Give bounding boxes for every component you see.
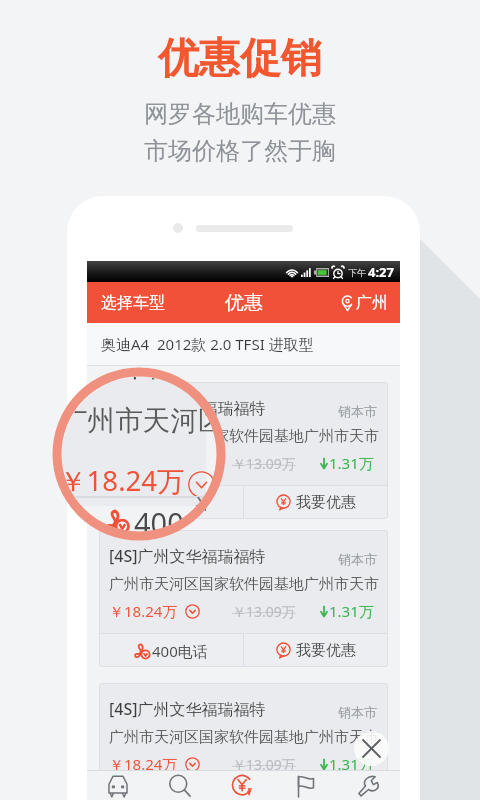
staticText: 广州市天河区国家软件园基地广州市天市 xyxy=(109,427,379,446)
staticText: ￥13.09万 xyxy=(232,454,296,473)
staticText: 下午 xyxy=(348,267,366,278)
staticText: [4S]广州文华福瑞福特 xyxy=(109,545,266,567)
staticText: 广州市天河区国家软件园基地广州市天市 xyxy=(109,575,379,594)
button[interactable]: 广州 xyxy=(334,285,400,321)
staticText: 话 xyxy=(196,493,217,523)
staticText: 优惠促销 xyxy=(158,33,322,85)
button[interactable]: 选择车型 xyxy=(87,285,173,321)
staticText: 市场价格了然于胸 xyxy=(144,136,336,166)
button[interactable]: 400电话 xyxy=(99,486,243,519)
staticText: 销本市 xyxy=(338,704,377,720)
button[interactable]: Flag xyxy=(274,771,337,800)
staticText: [4S]广州文华福瑞福特 xyxy=(109,698,266,720)
staticText: 1.31万 xyxy=(329,754,374,774)
button[interactable]: Close xyxy=(354,731,389,766)
button[interactable]: 400电话 xyxy=(99,787,243,800)
button[interactable]: [4S]广州文华福瑞福特 xyxy=(99,382,388,519)
staticText: ￥18.24万 xyxy=(109,601,178,621)
staticText: [4S]广州文华福瑞福特 xyxy=(109,397,266,419)
button[interactable]: [4S]广州文华福瑞福特 xyxy=(99,530,388,667)
staticText: 选择车型 xyxy=(101,293,165,313)
staticText: 销本市 xyxy=(338,403,377,419)
staticText: ￥13.09万 xyxy=(232,755,296,774)
button[interactable]: 400电话 xyxy=(99,634,243,667)
button[interactable]: Deals xyxy=(211,771,274,800)
button[interactable]: [4S]广州文华福瑞福特 xyxy=(99,683,388,800)
staticText: ￥13.09万 xyxy=(232,602,296,621)
staticText: 我要优惠 xyxy=(296,787,356,800)
staticText: 1.31万 xyxy=(329,453,374,473)
staticText: ￥18.24万 xyxy=(62,462,185,500)
staticText: 广州 xyxy=(356,293,388,313)
staticText: 我要优惠 xyxy=(296,493,356,512)
button[interactable]: Tools xyxy=(337,771,400,800)
button[interactable]: Cars xyxy=(87,771,149,800)
staticText: 网罗各地购车优惠 xyxy=(144,99,336,129)
button[interactable]: 我要优惠 xyxy=(244,787,388,800)
staticText: 4:27 xyxy=(368,263,394,281)
staticText: 广州市天河区国家软件园基地广州市天市 xyxy=(109,728,379,747)
staticText: 销本市 xyxy=(338,551,377,567)
staticText: 400 xyxy=(134,503,184,532)
button[interactable]: Search xyxy=(149,771,211,800)
staticText: 400电话 xyxy=(152,493,208,513)
staticText: 我要优惠 xyxy=(296,641,356,660)
staticText: 400电话 xyxy=(152,787,208,800)
staticText: 广 州市 xyxy=(62,377,168,385)
staticText: 1.31万 xyxy=(329,601,374,621)
staticText: 优惠 xyxy=(225,291,263,315)
button[interactable]: 奥迪A4 2012款 2.0 TFSI 进取型 xyxy=(87,323,400,365)
staticText: ￥18.24万 xyxy=(109,453,178,473)
button[interactable]: 我要优惠 xyxy=(244,486,388,519)
staticText: 广州市天河区国家软 xyxy=(62,403,215,438)
staticText: 400电话 xyxy=(152,641,208,661)
button[interactable]: 我要优惠 xyxy=(244,634,388,667)
staticText: ￥18.24万 xyxy=(109,754,178,774)
staticText: 奥迪A4 2012款 2.0 TFSI 进取型 xyxy=(101,334,314,354)
